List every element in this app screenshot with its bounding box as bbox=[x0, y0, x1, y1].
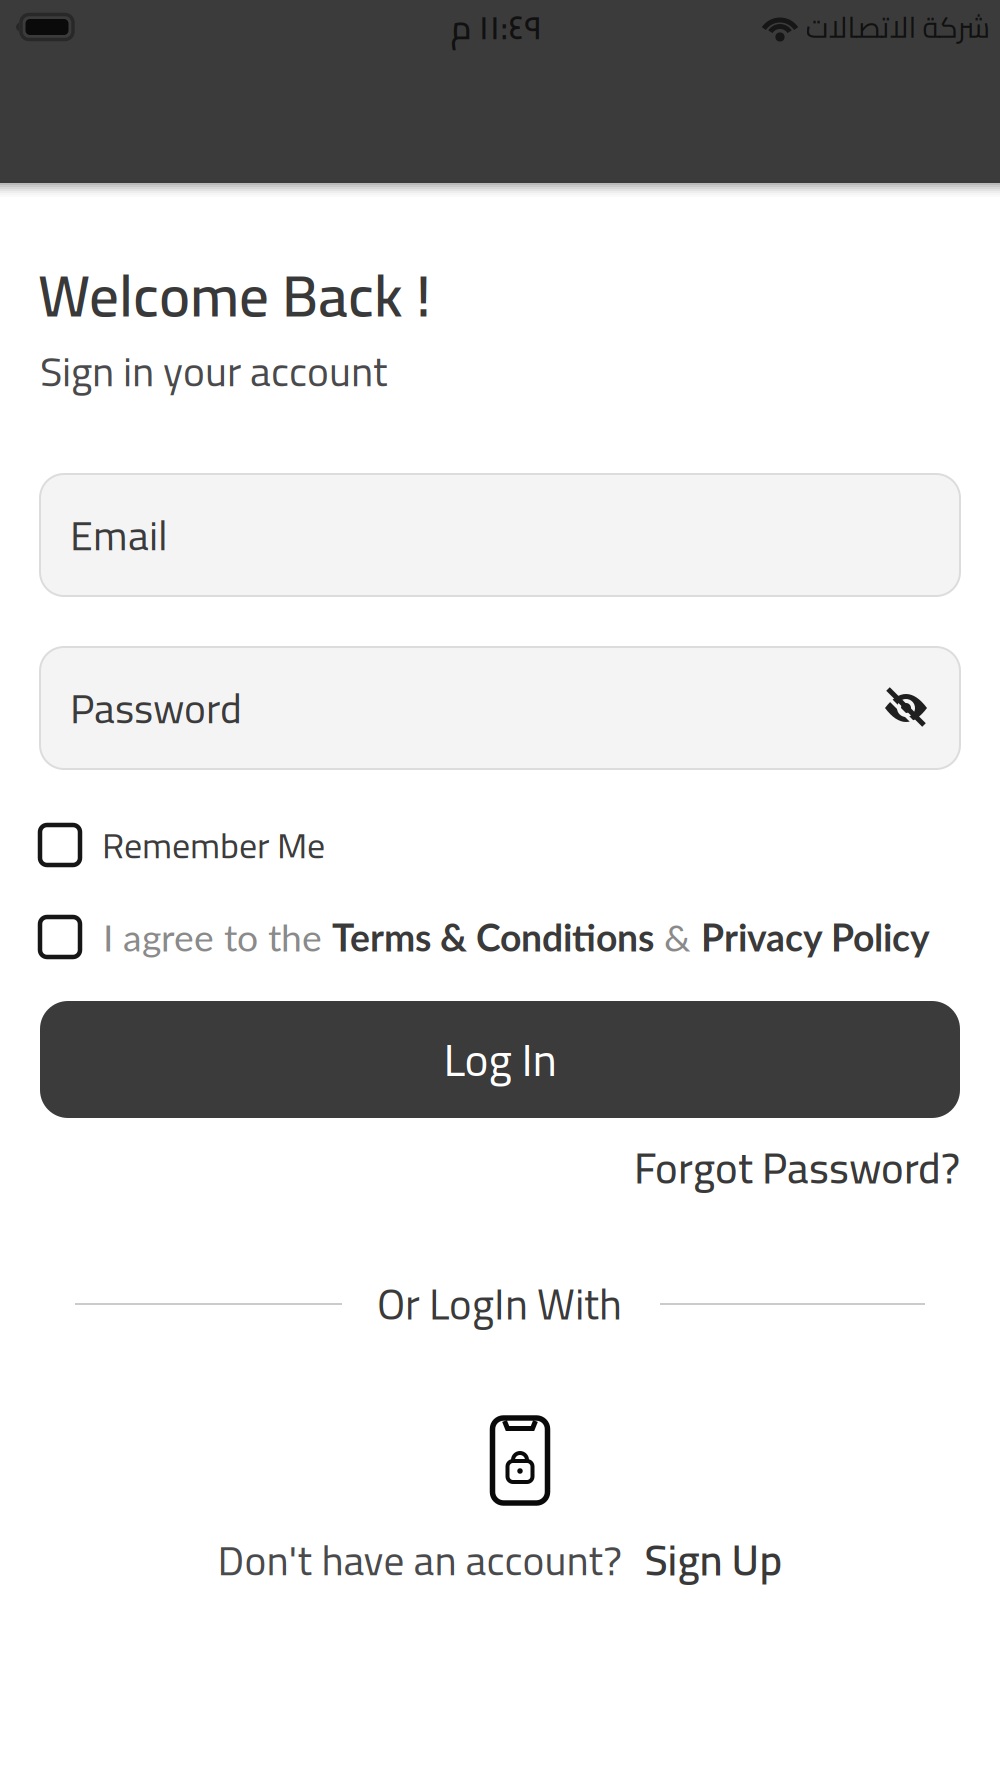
staticText: Don't have an account? bbox=[217, 1521, 621, 1599]
staticText: Welcome Back ! bbox=[38, 240, 431, 350]
button[interactable]: Email bbox=[40, 474, 960, 596]
staticText: Sign Up bbox=[644, 1520, 782, 1600]
staticText: Email bbox=[70, 496, 168, 574]
staticText: Privacy Policy bbox=[701, 915, 930, 959]
button[interactable]: Log in with phone bbox=[492, 1418, 547, 1503]
staticText: Log In bbox=[443, 1017, 556, 1102]
staticText: Terms & Conditions bbox=[332, 915, 654, 959]
button[interactable]: Remember Me bbox=[40, 823, 325, 867]
staticText: Or LogIn With bbox=[377, 1264, 622, 1344]
staticText: Password bbox=[70, 669, 242, 747]
button[interactable]: Show password bbox=[884, 686, 928, 730]
button[interactable]: I agree to the bbox=[40, 915, 930, 959]
staticText: ١١:٤٩ م bbox=[450, 0, 542, 58]
staticText: Sign in your account bbox=[40, 332, 388, 410]
staticText: I agree to the bbox=[103, 915, 332, 959]
button[interactable]: Password bbox=[40, 647, 960, 769]
button[interactable]: Forgot Password? bbox=[634, 1142, 960, 1194]
button[interactable]: Log In bbox=[40, 1001, 960, 1118]
staticText: Forgot Password? bbox=[634, 1128, 960, 1208]
staticText: شركة الاتصالات bbox=[805, 0, 990, 54]
staticText: & bbox=[654, 915, 701, 959]
button[interactable]: Sign Up bbox=[621, 1536, 782, 1584]
staticText: Remember Me bbox=[102, 811, 325, 879]
